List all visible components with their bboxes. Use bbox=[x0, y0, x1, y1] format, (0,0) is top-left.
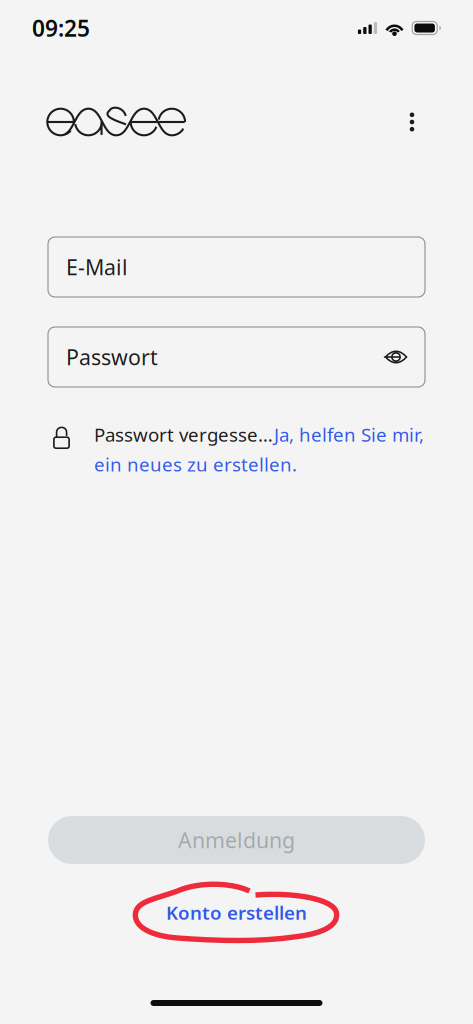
staticText: Ja, helfen Sie mir, bbox=[274, 422, 424, 447]
staticText: Anmeldung bbox=[178, 826, 295, 854]
staticText: Passwort vergessen? bbox=[94, 422, 274, 447]
button[interactable]: Passwort vergessen? bbox=[94, 422, 424, 477]
button[interactable]: Show password bbox=[381, 342, 411, 372]
button[interactable]: Konto erstellen bbox=[131, 882, 341, 943]
staticText: Konto erstellen bbox=[166, 900, 307, 925]
staticText: E-Mail bbox=[66, 253, 128, 281]
staticText: Passwort bbox=[66, 343, 158, 371]
staticText: ein neues zu erstellen. bbox=[94, 452, 297, 477]
button[interactable]: Anmeldung bbox=[48, 816, 425, 864]
button[interactable]: More options bbox=[395, 100, 429, 144]
staticText: 09:25 bbox=[32, 13, 90, 43]
